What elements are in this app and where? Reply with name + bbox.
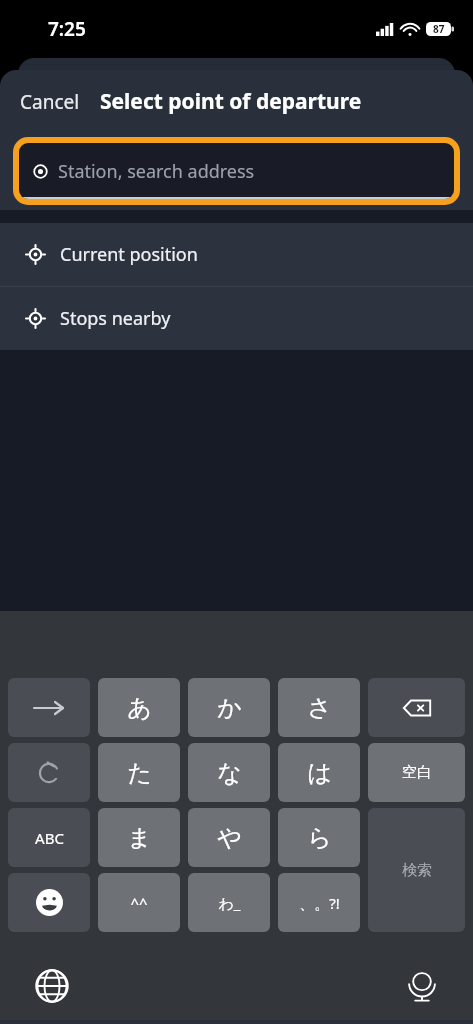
button[interactable]: 検索 [368,808,465,932]
button[interactable]: Emoji [8,873,90,932]
staticText: た [127,758,152,788]
button[interactable] [8,678,90,737]
staticText: Select point of departure [100,87,362,116]
button[interactable] [8,743,90,802]
staticText: や [217,823,242,853]
staticText: 、。?! [299,893,340,913]
button[interactable]: さ [278,678,360,737]
staticText: さ [307,693,332,723]
staticText: ^^ [130,893,148,913]
staticText: な [217,758,242,788]
button[interactable]: Current position [0,223,473,286]
staticText: Current position [60,242,198,267]
staticText: 空白 [402,763,432,782]
button[interactable]: か [188,678,270,737]
button[interactable]: Voice input [392,956,452,1016]
button[interactable]: 空白 [368,743,465,802]
staticText: か [217,693,242,723]
staticText: Cancel [20,89,80,115]
button[interactable]: 、。?! [278,873,360,932]
button[interactable]: ^^ [98,873,180,932]
button[interactable]: ま [98,808,180,867]
button[interactable]: ら [278,808,360,867]
button[interactable]: Cancel [8,83,92,121]
staticText: Stops nearby [60,306,171,331]
staticText: あ [127,693,152,723]
staticText: は [307,758,332,788]
button[interactable]: た [98,743,180,802]
button[interactable]: Delete [368,678,465,737]
button[interactable]: は [278,743,360,802]
button[interactable]: わ_ [188,873,270,932]
button[interactable]: ABC [8,808,90,867]
button[interactable]: Stops nearby [0,287,473,350]
button[interactable]: や [188,808,270,867]
button[interactable]: Station, search address [13,137,460,205]
button[interactable]: あ [98,678,180,737]
button[interactable]: Switch keyboard language [22,956,82,1016]
staticText: 87 [433,22,445,36]
button[interactable]: な [188,743,270,802]
staticText: ま [127,823,152,853]
staticText: 検索 [402,861,432,880]
staticText: 7:25 [48,16,86,42]
staticText: ABC [35,828,64,848]
staticText: ら [307,823,332,853]
staticText: Station, search address [58,159,255,184]
staticText: わ_ [218,893,241,913]
